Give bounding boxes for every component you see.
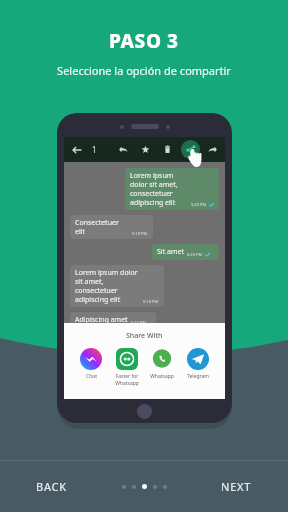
staticText: Lorem ipsum dolor sit amet, consectetuer…	[75, 268, 140, 304]
button[interactable]: Forward	[206, 143, 219, 156]
button[interactable]: Delete	[161, 143, 174, 156]
button[interactable]: Consectetuer elit	[70, 215, 153, 239]
button[interactable]: Star	[139, 143, 152, 156]
staticText: 5:20 PM	[187, 252, 203, 257]
staticText: Whatsapp	[150, 373, 174, 380]
button[interactable]: Faster for Whatsapp	[112, 348, 142, 386]
staticText: Share With	[126, 331, 163, 341]
staticText: NEXT	[221, 479, 252, 494]
staticText: Consectetuer elit	[75, 218, 129, 236]
staticText: Sit amet	[157, 247, 184, 257]
staticText: 6:18 PM	[143, 299, 159, 304]
button[interactable]: BACK	[30, 473, 73, 500]
staticText: PASO 3	[109, 28, 179, 54]
button[interactable]: Share	[181, 140, 200, 159]
button[interactable]: Reply	[117, 143, 130, 156]
button[interactable]: Sit amet	[152, 244, 219, 260]
button[interactable]: Lorem ipsum dolor sit amet, consectetuer…	[70, 265, 164, 307]
button[interactable]: Lorem ipsum dolor sit amet, consectetuer…	[125, 168, 219, 210]
staticText: Adipiscing amet	[75, 315, 128, 325]
button[interactable]: Back	[70, 143, 84, 157]
staticText: 1	[92, 144, 97, 155]
staticText: 5:20 PM	[191, 202, 207, 207]
staticText: 5:18 PM	[132, 231, 148, 236]
staticText: Telegram	[187, 373, 209, 380]
button[interactable]: Whatsapp	[147, 348, 177, 380]
staticText: 5:23 PM	[131, 320, 147, 325]
button[interactable]: Chat	[76, 348, 106, 380]
button[interactable]: Adipiscing amet	[70, 312, 156, 328]
staticText: Seleccione la opción de compartir	[57, 63, 231, 78]
staticText: Lorem ipsum dolor sit amet, consectetuer…	[130, 171, 188, 207]
staticText: Faster for Whatsapp	[115, 373, 139, 386]
button[interactable]: NEXT	[215, 473, 258, 500]
button[interactable]: Telegram	[183, 348, 213, 380]
staticText: Chat	[86, 373, 97, 380]
staticText: BACK	[36, 479, 67, 494]
